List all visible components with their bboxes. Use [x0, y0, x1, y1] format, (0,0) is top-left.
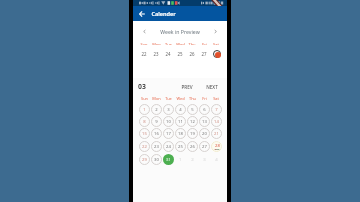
- button[interactable]: 4: [175, 104, 186, 115]
- staticText: 19: [190, 131, 195, 137]
- button[interactable]: 22: [139, 141, 150, 152]
- staticText: 12: [190, 119, 195, 125]
- button[interactable]: 14: [211, 116, 222, 127]
- button[interactable]: 1: [139, 104, 150, 115]
- button[interactable]: Previous week: [139, 26, 150, 37]
- button[interactable]: 6: [199, 104, 210, 115]
- button[interactable]: 27: [199, 141, 210, 152]
- button[interactable]: 24: [163, 141, 174, 152]
- staticText: 7: [215, 107, 218, 113]
- staticText: Sat: [213, 42, 219, 45]
- staticText: Calender: [151, 10, 176, 17]
- button[interactable]: 20: [199, 128, 210, 139]
- staticText: Tue: [165, 42, 172, 45]
- staticText: 28: [215, 52, 220, 57]
- staticText: 2: [191, 157, 194, 163]
- staticText: 1: [179, 157, 182, 163]
- button[interactable]: Back: [136, 8, 147, 19]
- button[interactable]: 17: [163, 128, 174, 139]
- staticText: 22: [142, 144, 147, 150]
- button[interactable]: 15: [139, 128, 150, 139]
- staticText: 1: [143, 107, 146, 113]
- staticText: Thu: [188, 42, 196, 45]
- staticText: NEXT: [206, 84, 218, 90]
- staticText: 21: [214, 131, 219, 137]
- staticText: 25: [178, 144, 183, 150]
- staticText: 31: [166, 157, 171, 163]
- staticText: 9: [155, 119, 158, 125]
- staticText: 26: [190, 144, 195, 150]
- staticText: 25: [177, 51, 183, 57]
- staticText: Sun: [141, 96, 148, 101]
- button[interactable]: PREV: [179, 82, 195, 92]
- button[interactable]: 18: [175, 128, 186, 139]
- button[interactable]: 5: [187, 104, 198, 115]
- button[interactable]: 2: [151, 104, 162, 115]
- button[interactable]: 12: [187, 116, 198, 127]
- staticText: 16: [154, 131, 159, 137]
- staticText: 27: [201, 51, 207, 57]
- staticText: 22: [141, 51, 147, 57]
- staticText: Sun: [140, 42, 148, 45]
- button[interactable]: NEXT: [204, 82, 220, 92]
- staticText: 24: [165, 51, 171, 57]
- staticText: 3: [203, 157, 206, 163]
- staticText: 30: [154, 157, 159, 163]
- staticText: 15: [142, 131, 147, 137]
- staticText: Fri: [202, 42, 207, 45]
- staticText: Wed: [176, 96, 185, 101]
- staticText: 20: [202, 131, 207, 137]
- staticText: Fri: [202, 96, 207, 101]
- staticText: 4: [215, 157, 218, 163]
- staticText: 14: [214, 119, 219, 125]
- button[interactable]: 31: [163, 154, 174, 165]
- button[interactable]: 25: [175, 141, 186, 152]
- staticText: 8: [143, 119, 146, 125]
- staticText: 2: [155, 107, 158, 113]
- staticText: 3: [167, 107, 170, 113]
- button[interactable]: 7: [211, 104, 222, 115]
- button[interactable]: 19: [187, 128, 198, 139]
- staticText: Thu: [189, 96, 196, 101]
- staticText: Mon: [152, 42, 161, 45]
- staticText: Wed: [176, 42, 185, 45]
- button[interactable]: 28: [213, 50, 221, 58]
- staticText: 10: [166, 119, 171, 125]
- staticText: 11: [178, 119, 183, 125]
- staticText: 18: [178, 131, 183, 137]
- staticText: 03: [138, 82, 146, 91]
- staticText: 29: [142, 157, 147, 163]
- staticText: 6: [203, 107, 206, 113]
- button[interactable]: 8: [139, 116, 150, 127]
- staticText: Tue: [165, 96, 172, 101]
- button[interactable]: 11: [175, 116, 186, 127]
- staticText: 26: [189, 51, 195, 57]
- button[interactable]: 16: [151, 128, 162, 139]
- staticText: PREV: [181, 84, 193, 90]
- staticText: Mon: [152, 96, 161, 101]
- staticText: 13: [202, 119, 207, 125]
- button[interactable]: 28: [211, 141, 222, 152]
- staticText: 27: [202, 144, 207, 150]
- staticText: 23: [154, 144, 159, 150]
- staticText: 24: [166, 144, 171, 150]
- button[interactable]: 30: [151, 154, 162, 165]
- staticText: Sat: [213, 96, 219, 101]
- button[interactable]: 29: [139, 154, 150, 165]
- staticText: 17: [166, 131, 171, 137]
- staticText: 4: [179, 107, 182, 113]
- button[interactable]: 3: [163, 104, 174, 115]
- button[interactable]: 13: [199, 116, 210, 127]
- button[interactable]: 26: [187, 141, 198, 152]
- staticText: 5: [191, 107, 194, 113]
- button[interactable]: Next week: [210, 26, 221, 37]
- staticText: Week in Preview: [160, 28, 200, 35]
- staticText: 23: [153, 51, 159, 57]
- button[interactable]: 9: [151, 116, 162, 127]
- button[interactable]: 21: [211, 128, 222, 139]
- button[interactable]: 10: [163, 116, 174, 127]
- button[interactable]: 23: [151, 141, 162, 152]
- staticText: 28: [215, 143, 220, 149]
